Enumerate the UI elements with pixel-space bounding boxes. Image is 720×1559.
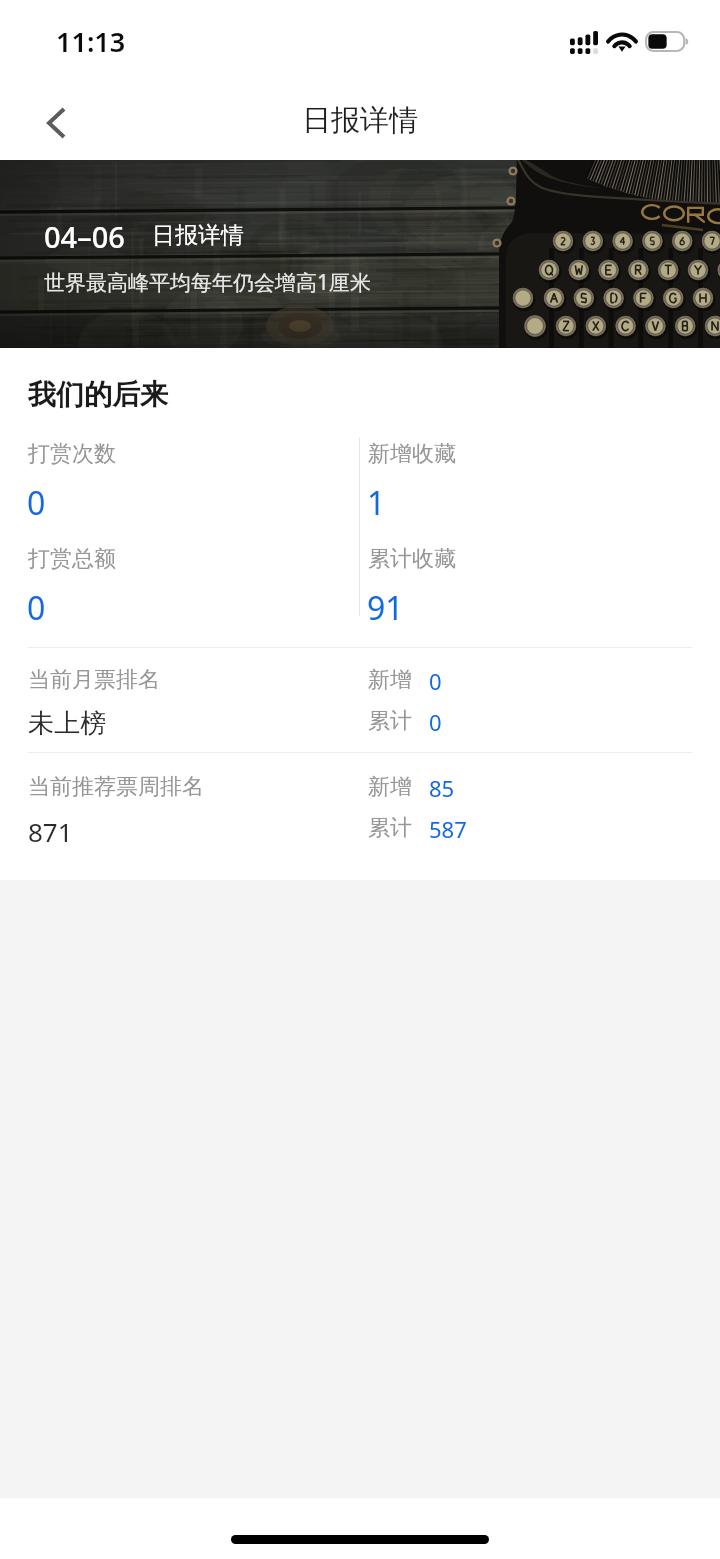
staticText: 我们的后来: [28, 377, 168, 412]
staticText: 0: [27, 481, 46, 525]
staticText: 871: [28, 814, 73, 849]
staticText: 当前推荐票周排名: [28, 773, 204, 801]
staticText: 打赏总额: [28, 545, 116, 573]
staticText: 日报详情: [152, 221, 244, 250]
staticText: 0: [429, 666, 442, 696]
staticText: 当前月票排名: [28, 666, 160, 694]
button[interactable]: 打赏次数: [28, 438, 348, 538]
staticText: 累计: [368, 707, 412, 735]
staticText: 0: [429, 707, 442, 737]
staticText: 累计: [368, 814, 412, 842]
staticText: 新增收藏: [368, 440, 456, 468]
staticText: 未上榜: [28, 707, 106, 740]
button[interactable]: 当前月票排名: [0, 666, 720, 766]
staticText: 新增: [368, 773, 412, 801]
staticText: 85: [429, 773, 455, 803]
button[interactable]: 打赏总额: [28, 543, 348, 643]
staticText: 1: [367, 481, 386, 525]
button[interactable]: 累计收藏: [368, 543, 688, 643]
staticText: 累计收藏: [368, 545, 456, 573]
staticText: 0: [27, 586, 46, 630]
staticText: 世界最高峰平均每年仍会增高1厘米: [44, 268, 372, 297]
button[interactable]: 当前推荐票周排名: [0, 773, 720, 873]
staticText: 打赏次数: [28, 440, 116, 468]
button[interactable]: 新增收藏: [368, 438, 688, 538]
staticText: 91: [367, 586, 404, 630]
staticText: 11:13: [56, 23, 126, 60]
staticText: 04–06: [44, 217, 125, 256]
staticText: 587: [429, 814, 467, 844]
staticText: 新增: [368, 666, 412, 694]
staticText: 日报详情: [302, 102, 418, 139]
button[interactable]: Back: [16, 85, 96, 160]
